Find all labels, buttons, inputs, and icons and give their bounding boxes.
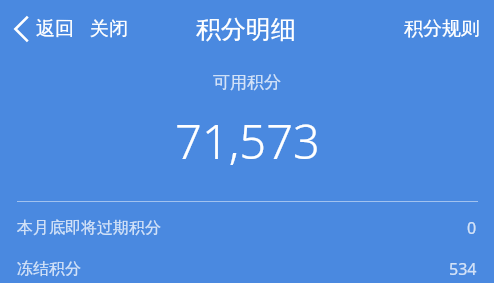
button[interactable]: 本月底即将过期积分 [0,202,494,254]
staticText: 本月底即将过期积分 [17,218,161,238]
staticText: 534 [449,258,477,280]
button[interactable]: 关闭 [84,9,134,49]
button[interactable]: 积分规则 [398,9,486,49]
staticText: 可用积分 [213,72,281,93]
staticText: 积分规则 [404,17,480,41]
staticText: 关闭 [90,17,128,41]
staticText: 0 [467,217,477,239]
staticText: 冻结积分 [17,259,81,279]
other: 返回 [14,16,28,42]
staticText: 返回 [36,17,74,41]
staticText: 积分明细 [196,14,296,45]
button[interactable]: 返回 [8,10,80,48]
staticText: 71,573 [175,109,320,173]
button[interactable]: 冻结积分 [0,254,494,283]
